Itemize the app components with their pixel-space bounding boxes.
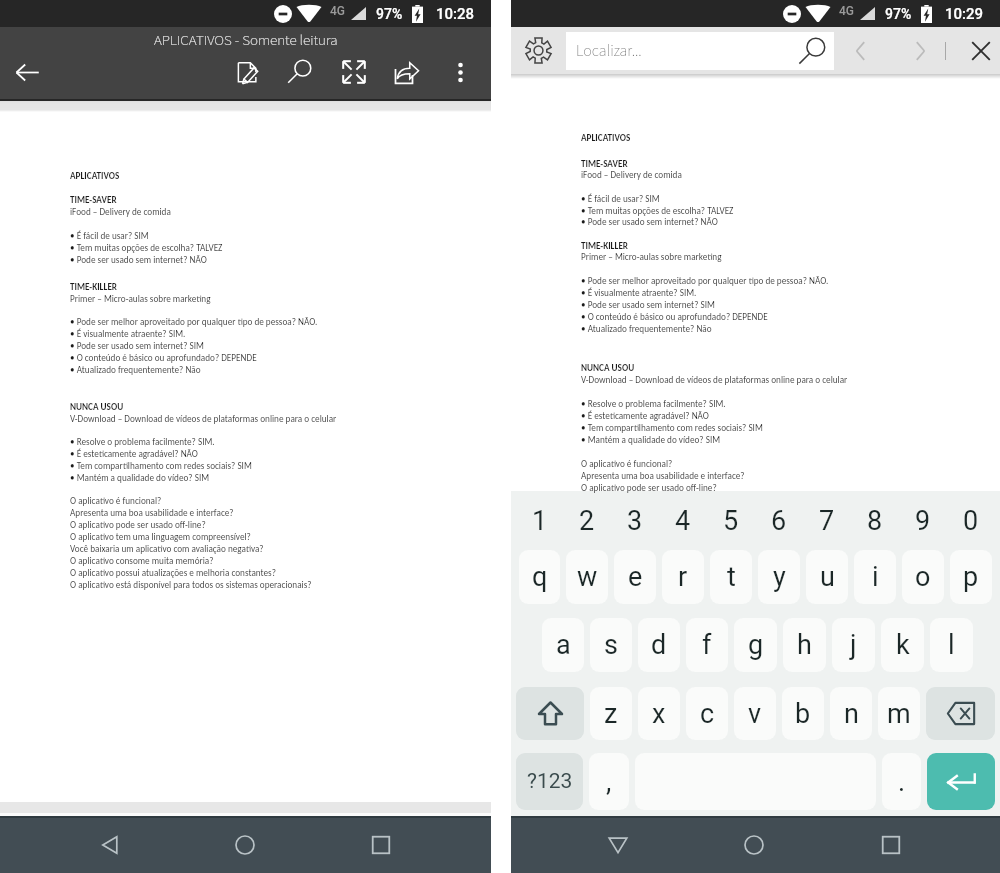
button[interactable]: h	[783, 618, 826, 672]
staticText: • Pode ser usado sem internet? SIM	[581, 299, 715, 310]
button[interactable]: Edit	[222, 48, 274, 96]
staticText: g	[748, 629, 764, 661]
button[interactable]: 5	[707, 491, 755, 550]
button[interactable]: Search	[273, 48, 325, 96]
staticText: O aplicativo pode ser usado off-line?	[581, 482, 717, 493]
button[interactable]: m	[878, 687, 920, 740]
button[interactable]: 6	[755, 491, 803, 550]
button[interactable]: a	[542, 618, 584, 672]
staticText: • Resolve o problema facilmente? SIM.	[70, 436, 215, 447]
staticText: NUNCA USOU	[581, 362, 635, 373]
button[interactable]: Home	[719, 816, 789, 873]
staticText: 4G	[839, 4, 854, 18]
button[interactable]: u	[806, 550, 848, 604]
button[interactable]: d	[638, 618, 680, 672]
staticText: y	[773, 561, 786, 593]
staticText: O aplicativo está disponível para todos …	[70, 579, 312, 590]
staticText: v	[748, 698, 762, 730]
button[interactable]: More options	[436, 48, 484, 96]
button[interactable]: Next	[899, 27, 940, 74]
staticText: iFood – Delivery de comida	[70, 206, 171, 217]
button[interactable]: n	[830, 687, 872, 740]
button[interactable]: Recents	[346, 816, 416, 873]
button[interactable]: q	[519, 550, 560, 604]
button[interactable]: r	[662, 550, 704, 604]
button[interactable]: o	[902, 550, 944, 604]
button[interactable]: t	[710, 550, 752, 604]
staticText: h	[797, 629, 812, 661]
button[interactable]: ,	[589, 753, 629, 810]
button[interactable]: 4	[659, 491, 707, 550]
button[interactable]: Localizar...	[566, 32, 834, 70]
button[interactable]: e	[614, 550, 656, 604]
button[interactable]: 7	[803, 491, 851, 550]
button[interactable]: ?123	[516, 753, 583, 810]
staticText: 0	[963, 505, 979, 537]
button[interactable]: 3	[611, 491, 659, 550]
button[interactable]: Shift	[516, 687, 584, 740]
staticText: 3	[627, 505, 643, 537]
staticText: ?123	[527, 769, 573, 794]
button[interactable]: Close	[961, 27, 1000, 74]
button[interactable]: k	[881, 618, 924, 672]
staticText: i	[872, 561, 879, 593]
button[interactable]: x	[638, 687, 680, 740]
button[interactable]: b	[782, 687, 824, 740]
staticText: e	[628, 561, 643, 593]
button[interactable]: p	[950, 550, 992, 604]
staticText: 4G	[330, 4, 345, 18]
staticText: APLICATIVOS - Somente leitura	[154, 30, 338, 51]
button[interactable]: y	[758, 550, 800, 604]
staticText: n	[844, 698, 859, 730]
staticText: Apresenta uma boa usabilidade e interfac…	[581, 470, 745, 481]
button[interactable]: g	[734, 618, 777, 672]
button[interactable]: z	[590, 687, 632, 740]
staticText: ,	[606, 766, 612, 798]
button[interactable]: Recents	[856, 816, 926, 873]
staticText: O aplicativo pode ser usado off-line?	[70, 519, 206, 530]
staticText: c	[700, 698, 715, 730]
staticText: • Mantém a qualidade do vídeo? SIM	[70, 472, 210, 483]
button[interactable]: Fullscreen	[328, 48, 380, 96]
button[interactable]: 8	[851, 491, 899, 550]
button[interactable]: 0	[947, 491, 995, 550]
button[interactable]: Settings	[511, 27, 566, 74]
staticText: TIME-KILLER	[581, 240, 629, 251]
staticText: • Pode ser melhor aproveitado por qualqu…	[581, 275, 829, 286]
staticText: TIME-KILLER	[70, 281, 118, 292]
button[interactable]: l	[930, 618, 973, 672]
button[interactable]: Share	[380, 48, 432, 96]
button[interactable]: Back	[1, 48, 53, 96]
button[interactable]: Back	[75, 816, 145, 873]
button[interactable]: Backspace	[926, 687, 995, 740]
staticText: • Mantém a qualidade do vídeo? SIM	[581, 434, 721, 445]
staticText: 7	[819, 505, 835, 537]
button[interactable]: .	[882, 753, 921, 810]
button[interactable]: w	[566, 550, 608, 604]
staticText: 6	[771, 505, 787, 537]
staticText: • É visualmente atraente? SIM.	[581, 287, 697, 298]
staticText: O aplicativo é funcional?	[581, 458, 673, 469]
staticText: w	[577, 561, 598, 593]
button[interactable]: 1	[516, 491, 563, 550]
staticText: • Tem compartilhamento com redes sociais…	[581, 422, 763, 433]
button[interactable]: c	[686, 687, 728, 740]
staticText: • Pode ser usado sem internet? NÃO	[70, 254, 207, 265]
button[interactable]: v	[734, 687, 776, 740]
button[interactable]: 9	[899, 491, 947, 550]
button[interactable]: i	[854, 550, 896, 604]
button[interactable]: s	[590, 618, 632, 672]
button[interactable]: Home	[210, 816, 280, 873]
staticText: Primer – Micro-aulas sobre marketing	[581, 251, 722, 262]
staticText: • É fácil de usar? SIM	[70, 230, 149, 241]
button[interactable]: Enter	[927, 753, 995, 810]
button[interactable]: j	[832, 618, 875, 672]
button[interactable]: Back	[583, 816, 653, 873]
button[interactable]: Previous	[840, 27, 881, 74]
staticText: • Pode ser usado sem internet? SIM	[70, 340, 204, 351]
staticText: APLICATIVOS	[70, 170, 120, 181]
button[interactable]: 2	[563, 491, 611, 550]
button[interactable]: f	[686, 618, 728, 672]
staticText: • Pode ser melhor aproveitado por qualqu…	[70, 316, 318, 327]
